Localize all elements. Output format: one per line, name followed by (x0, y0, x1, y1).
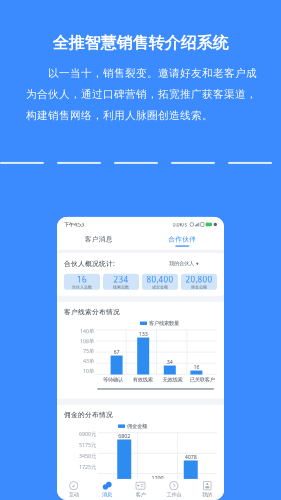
staticText: 6802 (118, 432, 130, 439)
staticText: 80,400 (146, 274, 173, 285)
staticText: 佣金的分布情况 (64, 411, 113, 419)
staticText: 已关联客户 (190, 377, 215, 383)
staticText: 我的 (202, 491, 212, 498)
staticText: 6900元 (79, 430, 96, 437)
staticText: 0.0K/s (172, 221, 187, 228)
button[interactable]: 我的 (191, 479, 224, 500)
staticText: 互动 (69, 491, 79, 498)
staticText: 20,800 (185, 274, 212, 285)
staticText: 佣金金额 (127, 423, 147, 429)
staticText: 140单 (80, 328, 94, 335)
staticText: 16 (193, 363, 199, 371)
staticText: 全推智慧销售转介绍系统 (52, 33, 228, 53)
staticText: 133 (139, 330, 148, 338)
staticText: 有效线索 (133, 377, 153, 383)
staticText: 客户线索数量 (149, 320, 179, 327)
staticText: 合伙人总数 (72, 285, 92, 290)
staticText: 线索总数 (113, 285, 129, 290)
staticText: 34 (167, 358, 173, 366)
staticText: 佣金总额 (191, 285, 207, 290)
button[interactable]: 客户消息 (57, 235, 140, 247)
staticText: 75单 (83, 347, 94, 355)
staticText: 无效线索 (162, 377, 182, 383)
staticText: 我的合伙人 ▾ (169, 260, 199, 267)
staticText: 1725元 (79, 463, 96, 470)
staticText: 消息 (102, 491, 112, 498)
staticText: 客户线索分布情况 (64, 308, 120, 316)
staticText: 3450元 (79, 452, 96, 459)
staticText: 5175元 (79, 441, 96, 448)
staticText: 成交金额 (152, 285, 168, 290)
staticText: 以一当十，销售裂变。邀请好友和老客户成 (26, 67, 257, 80)
staticText: 下午4:53 (64, 221, 84, 228)
staticText: 客户 (135, 491, 145, 498)
staticText: 等待确认 (103, 377, 123, 383)
staticText: 为合伙人，通过口碑营销，拓宽推广获客渠道， (26, 88, 257, 101)
button[interactable]: 工作台 (157, 479, 191, 500)
staticText: 1200 (151, 474, 163, 481)
staticText: 客户消息 (85, 235, 113, 243)
button[interactable]: 消息 (90, 479, 124, 500)
button[interactable]: 合作伙伴 (140, 235, 224, 247)
staticText: 234 (113, 274, 128, 285)
button[interactable]: 互动 (57, 479, 90, 500)
staticText: 67 (114, 348, 120, 356)
staticText: 合作伙伴 (168, 235, 196, 243)
staticText: 108单 (80, 337, 94, 345)
staticText: 构建销售网络，利用人脉圈创造线索。 (26, 109, 213, 122)
staticText: 43单 (83, 357, 94, 365)
button[interactable]: 客户 (124, 479, 157, 500)
staticText: 16 (77, 274, 87, 285)
staticText: 合伙人概况统计: (64, 259, 115, 268)
staticText: 4078 (185, 453, 197, 460)
staticText: 10单 (83, 367, 94, 375)
staticText: 工作台 (166, 491, 181, 498)
